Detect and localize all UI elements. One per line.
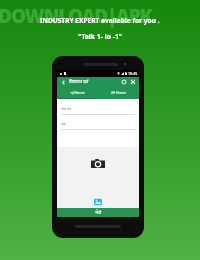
staticText: DOWNLOAD|APK [0, 3, 152, 29]
button[interactable]: नई शिकायत [57, 87, 98, 99]
staticText: 10:45 [128, 71, 138, 76]
staticText: भेजें [95, 210, 102, 216]
staticText: पता [61, 121, 66, 126]
staticText: शिकायत दर्ज [69, 79, 89, 85]
button[interactable]: Take photo [91, 159, 105, 168]
button[interactable]: Home [120, 78, 128, 86]
staticText: "Talk 1- lo -1" [78, 32, 123, 41]
button[interactable]: Close [129, 78, 137, 86]
staticText: मेरी शिकायत [111, 91, 126, 95]
button[interactable]: भेजें [57, 208, 139, 217]
staticText: INDUSTRY EXPERT available for you . [40, 16, 160, 25]
button[interactable]: Back [59, 78, 67, 86]
staticText: नाम दर्ज [61, 106, 71, 111]
button[interactable]: मेरी शिकायत [98, 87, 139, 99]
button[interactable]: Attach image [94, 198, 102, 206]
staticText: नई शिकायत [70, 91, 85, 95]
